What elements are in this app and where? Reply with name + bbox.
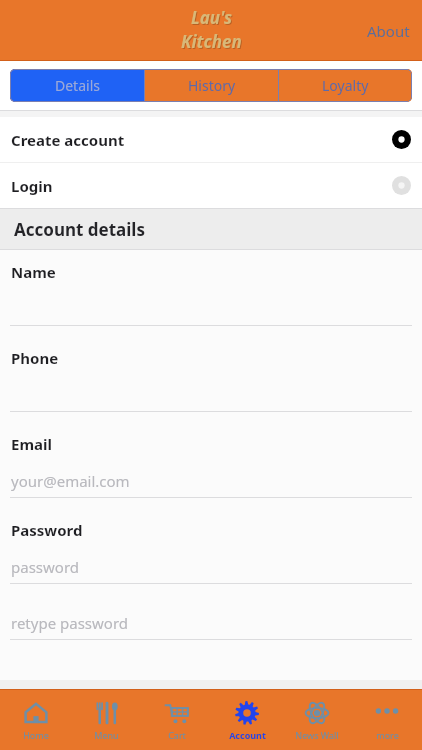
staticText: retype password xyxy=(11,613,129,633)
button[interactable]: Details xyxy=(10,69,144,102)
button[interactable] xyxy=(0,368,422,412)
button[interactable]: Menu xyxy=(71,690,142,750)
button[interactable]: Create account xyxy=(0,117,422,162)
staticText: more xyxy=(376,729,399,741)
other: Login xyxy=(392,176,411,195)
button[interactable]: Loyalty xyxy=(279,69,412,102)
button[interactable]: Home xyxy=(0,690,71,750)
button[interactable]: About xyxy=(355,13,422,49)
staticText: Name xyxy=(11,262,56,282)
staticText: Loyalty xyxy=(322,76,369,95)
button[interactable]: Cart xyxy=(142,690,212,750)
staticText: Lau's xyxy=(192,7,234,30)
staticText: News Wall xyxy=(295,729,339,741)
staticText: Kitchen xyxy=(181,30,242,53)
staticText: Lau's xyxy=(191,6,233,29)
staticText: Account details xyxy=(14,218,145,241)
other: Create account selected xyxy=(392,130,411,149)
staticText: Login xyxy=(11,176,53,196)
button[interactable]: History xyxy=(145,69,278,102)
staticText: Home xyxy=(23,729,49,741)
staticText: Details xyxy=(55,76,100,95)
button[interactable]: password xyxy=(0,540,422,584)
staticText: Account xyxy=(229,729,266,741)
staticText: Email xyxy=(11,434,52,454)
button[interactable]: retype password xyxy=(0,584,422,640)
staticText: Phone xyxy=(11,348,59,368)
staticText: History xyxy=(188,76,236,95)
staticText: About xyxy=(367,21,410,41)
button[interactable]: Account xyxy=(212,690,282,750)
button[interactable]: News Wall xyxy=(282,690,352,750)
staticText: Create account xyxy=(11,130,125,150)
staticText: your@email.com xyxy=(11,471,130,491)
button[interactable] xyxy=(0,282,422,326)
staticText: Password xyxy=(11,520,83,540)
staticText: password xyxy=(11,557,79,577)
staticText: Cart xyxy=(168,729,186,741)
button[interactable]: Login xyxy=(0,163,422,208)
staticText: Kitchen xyxy=(182,31,243,54)
staticText: Menu xyxy=(94,729,119,741)
button[interactable]: more xyxy=(352,690,422,750)
button[interactable]: your@email.com xyxy=(0,454,422,498)
